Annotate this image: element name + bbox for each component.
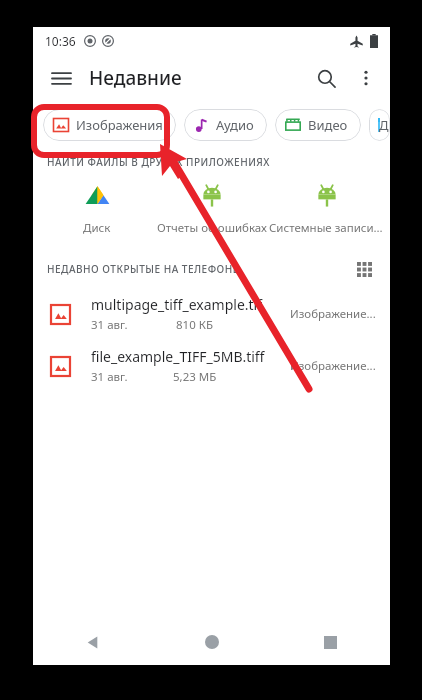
button[interactable]: Системные записи ... (269, 175, 384, 242)
button[interactable]: Сетка (352, 257, 376, 281)
button[interactable]: Изображения (43, 109, 176, 141)
button[interactable]: Ещё (346, 58, 386, 98)
staticText: file_example_TIFF_5MB.tiff (91, 347, 265, 366)
staticText: Системные записи ... (269, 220, 384, 236)
staticText: Аудио (216, 116, 254, 134)
button[interactable]: file_example_TIFF_5MB.tiff (33, 340, 390, 392)
button[interactable]: Меню (41, 58, 81, 98)
staticText: multipage_tiff_example.tif (91, 295, 263, 314)
staticText: 31 авг. (91, 369, 128, 385)
button[interactable]: Назад (33, 619, 152, 665)
button[interactable]: Диск (39, 175, 154, 242)
staticText: Диск (83, 220, 111, 236)
staticText: Видео (308, 116, 348, 134)
button[interactable]: Главный экран (152, 619, 271, 665)
button[interactable]: Отчеты об ошибках (154, 175, 269, 242)
button[interactable]: Видео (275, 109, 361, 141)
staticText: Изображение... (290, 358, 376, 374)
staticText: Изображения (76, 116, 163, 134)
button[interactable]: Поиск (306, 58, 346, 98)
button[interactable]: До (369, 109, 390, 141)
staticText: НЕДАВНО ОТКРЫТЫЕ НА ТЕЛЕФОНЕ (47, 262, 239, 276)
staticText: 10:36 (45, 33, 76, 49)
staticText: Изображение... (290, 306, 376, 322)
staticText: 31 авг. (91, 317, 128, 333)
button[interactable]: Обзор (271, 619, 390, 665)
button[interactable]: Аудио (184, 109, 267, 141)
staticText: НАЙТИ ФАЙЛЫ В ДРУГИХ ПРИЛОЖЕНИЯХ (47, 155, 270, 169)
staticText: Недавние (89, 65, 182, 91)
staticText: 5,23 МБ (173, 369, 217, 385)
staticText: Отчеты об ошибках (157, 220, 267, 236)
staticText: 810 КБ (176, 317, 213, 333)
button[interactable]: multipage_tiff_example.tif (33, 288, 390, 340)
